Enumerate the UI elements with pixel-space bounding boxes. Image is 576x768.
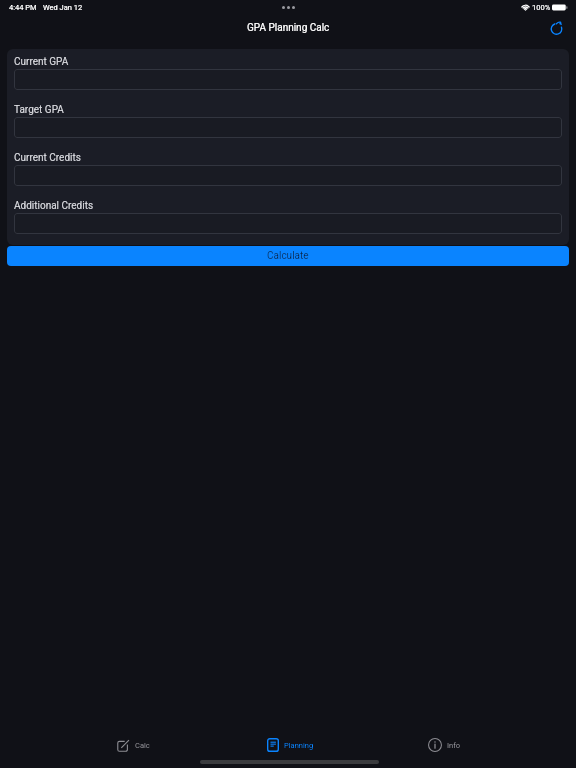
staticText: Current GPA: [14, 56, 69, 68]
staticText: Planning: [284, 741, 314, 750]
button[interactable]: [14, 117, 562, 138]
button[interactable]: Reset: [547, 18, 567, 38]
staticText: 100%: [532, 3, 551, 12]
button[interactable]: Calculate: [7, 246, 569, 266]
button[interactable]: Calc: [117, 733, 150, 757]
staticText: Wed Jan 12: [43, 3, 83, 12]
staticText: GPA Planning Calc: [247, 22, 330, 34]
staticText: Calculate: [267, 250, 309, 262]
staticText: Additional Credits: [14, 200, 94, 212]
button[interactable]: Planning: [267, 733, 314, 757]
staticText: Info: [447, 741, 461, 750]
staticText: 4:44 PM: [9, 3, 37, 12]
button[interactable]: [14, 213, 562, 234]
staticText: Target GPA: [14, 104, 64, 116]
staticText: Calc: [135, 741, 150, 750]
staticText: Current Credits: [14, 152, 81, 164]
button[interactable]: [14, 165, 562, 186]
button[interactable]: [14, 69, 562, 90]
button[interactable]: Info: [428, 733, 461, 757]
